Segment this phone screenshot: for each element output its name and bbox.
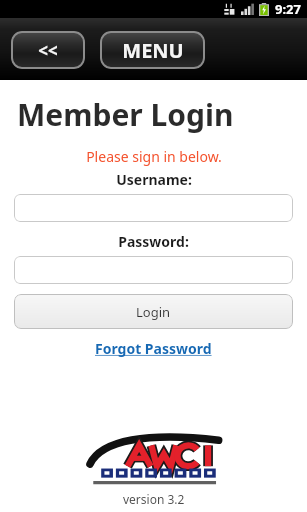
staticText: version 3.2 (123, 491, 185, 507)
button[interactable]: MENU (100, 31, 205, 69)
staticText: Password: (118, 232, 189, 251)
button[interactable]: Forgot Password (89, 337, 218, 360)
staticText: << (38, 39, 58, 62)
staticText: Username: (116, 170, 192, 189)
button[interactable]: Login (14, 294, 293, 329)
staticText: 9:27 (275, 0, 301, 18)
staticText: MENU (122, 37, 184, 64)
staticText: Login (136, 303, 171, 321)
staticText: Member Login (17, 94, 234, 135)
button[interactable]: Text field (14, 256, 293, 284)
staticText: Please sign in below. (86, 147, 222, 166)
staticText: Forgot Password (95, 339, 212, 358)
button[interactable]: Back (11, 31, 85, 69)
button[interactable]: Text field (14, 194, 293, 222)
